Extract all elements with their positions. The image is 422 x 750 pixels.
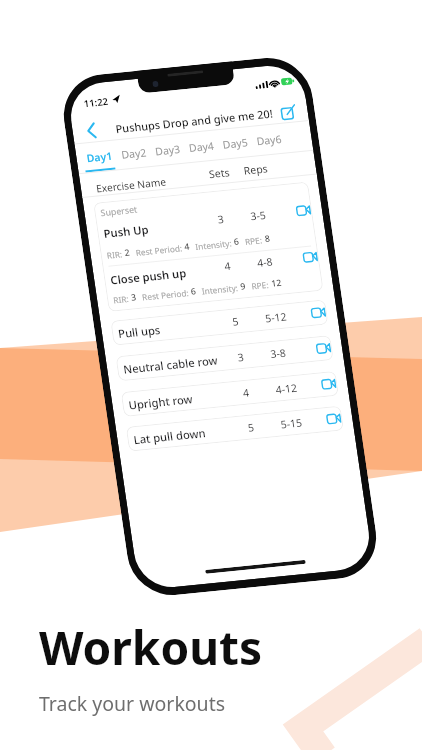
button[interactable]: Neutral cable row [105, 238, 344, 478]
staticText: Pushups Drop and give me 20! [108, 35, 280, 207]
button[interactable]: Play video [308, 333, 338, 363]
staticText: Intensity: [190, 220, 239, 269]
staticText: 3 [125, 288, 143, 306]
button[interactable]: Day6 [243, 114, 294, 166]
staticText: 4 [217, 255, 238, 276]
button[interactable]: Play video [313, 369, 343, 398]
staticText: Reps [237, 151, 275, 188]
staticText: Day1 [80, 137, 119, 177]
staticText: Workouts [39, 616, 263, 679]
staticText: Rest Period: [137, 265, 196, 324]
staticText: Neutral cable row [116, 310, 225, 419]
staticText: Close push up [103, 230, 194, 322]
staticText: 3-8 [263, 338, 293, 368]
button[interactable]: Play video [318, 403, 348, 433]
staticText: Track your workouts [39, 690, 226, 717]
button[interactable]: Day2 [107, 128, 159, 179]
staticText: 4 [178, 238, 196, 256]
button[interactable]: Day4 [175, 121, 227, 173]
staticText: Day4 [182, 127, 221, 166]
staticText: Superset [95, 187, 143, 236]
staticText: RIR: [101, 240, 130, 269]
staticText: RPE: [246, 270, 277, 300]
staticText: 12 [265, 272, 288, 294]
staticText: Push Up [96, 201, 156, 261]
staticText: 4 [236, 382, 257, 403]
staticText: 5 [225, 311, 246, 332]
staticText: Intensity: [196, 264, 246, 314]
staticText: Rest Period: [130, 220, 190, 280]
staticText: RIR: [108, 285, 137, 313]
button[interactable]: Edit [269, 92, 308, 132]
staticText: Lat pull down [126, 392, 214, 480]
staticText: Pull ups [111, 303, 168, 360]
staticText: 5-12 [258, 299, 294, 335]
staticText: 5-15 [274, 405, 309, 441]
staticText: Day3 [148, 131, 187, 170]
button[interactable]: Play video [295, 242, 325, 272]
button[interactable]: Upright row [110, 274, 350, 514]
button[interactable]: Play video [303, 297, 333, 327]
staticText: 8 [259, 230, 277, 248]
staticText: RPE: [239, 225, 270, 256]
staticText: Sets [202, 156, 237, 191]
staticText: 4-12 [269, 371, 304, 407]
staticText: Exercise Name [89, 143, 174, 227]
staticText: Day5 [216, 124, 255, 163]
button[interactable]: Back [70, 109, 114, 152]
staticText: 2 [119, 244, 137, 262]
staticText: Day6 [250, 121, 288, 159]
staticText: 6 [228, 233, 246, 251]
staticText: 4-8 [250, 247, 280, 277]
button[interactable]: Pull ups [100, 203, 339, 442]
staticText: 6 [185, 282, 203, 300]
staticText: 5 [241, 417, 262, 438]
button[interactable]: Play video [288, 195, 318, 225]
staticText: 11:22 [77, 84, 115, 121]
staticText: Day2 [114, 134, 153, 173]
button[interactable]: Lat pull down [115, 309, 355, 549]
button[interactable]: Day1 [74, 131, 125, 183]
staticText: 9 [234, 277, 252, 295]
button[interactable]: Superset [46, 85, 371, 409]
button[interactable]: Day3 [141, 124, 193, 176]
staticText: 3 [210, 209, 231, 230]
staticText: Upright row [121, 362, 201, 442]
staticText: 3 [231, 347, 252, 367]
button[interactable]: Day5 [209, 118, 261, 169]
staticText: 3-5 [243, 201, 273, 230]
